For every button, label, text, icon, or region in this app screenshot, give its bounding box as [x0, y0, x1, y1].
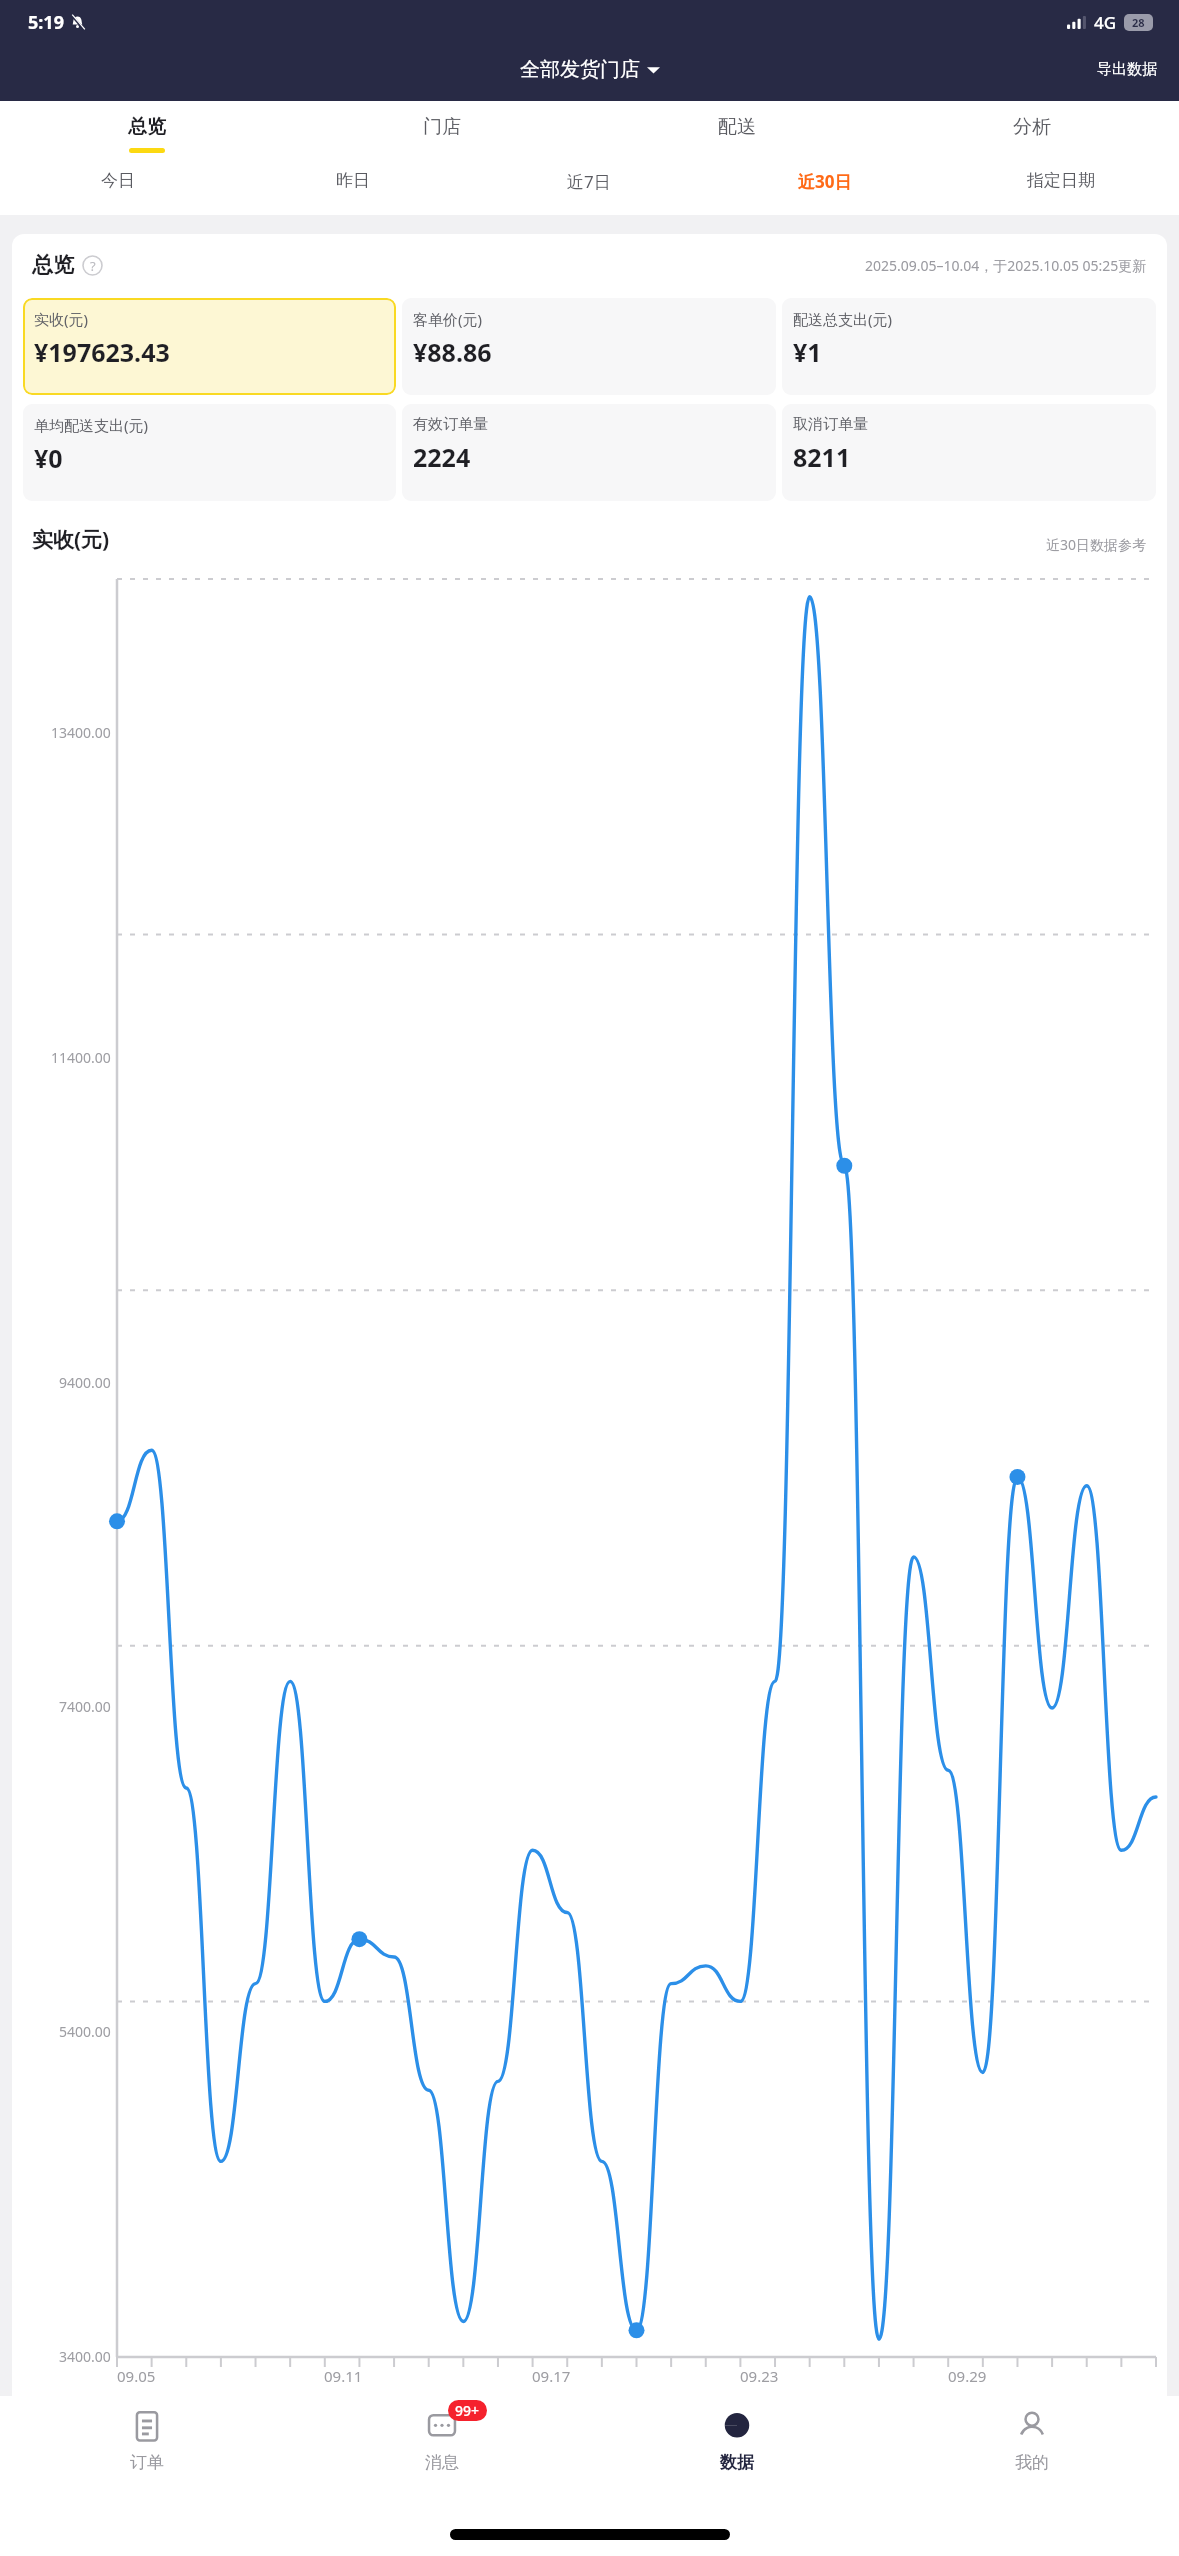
button[interactable]: 近7日 — [471, 170, 707, 193]
button[interactable]: 配送 — [589, 115, 884, 153]
button[interactable]: 近30日 — [707, 170, 943, 193]
button[interactable]: 单均配送支出(元) — [23, 404, 396, 501]
staticText: 我的 — [1015, 2452, 1049, 2473]
staticText: 9400.00 — [59, 1373, 111, 1392]
staticText: ¥88.86 — [413, 335, 492, 369]
staticText: 09.29 — [948, 2366, 987, 2386]
staticText: 有效订单量 — [413, 415, 488, 434]
button[interactable]: 今日 — [0, 170, 235, 191]
button[interactable]: 说明 — [82, 255, 103, 276]
button[interactable]: 有效订单量 — [402, 404, 776, 501]
staticText: 导出数据 — [1097, 60, 1157, 79]
other: 我的 — [1014, 2408, 1050, 2444]
staticText: 近30日数据参考 — [1046, 535, 1147, 554]
staticText: 客单价(元) — [413, 309, 483, 329]
staticText: 配送 — [718, 115, 756, 139]
staticText: 09.05 — [117, 2366, 156, 2386]
button[interactable]: 配送总支出(元) — [782, 298, 1156, 395]
staticText: 今日 — [101, 170, 135, 191]
button[interactable]: 订单 — [0, 2396, 294, 2501]
staticText: 总览 — [32, 252, 74, 278]
staticText: 实收(元) — [34, 309, 89, 329]
button[interactable]: 取消订单量 — [782, 404, 1156, 501]
staticText: 2025.09.05–10.04，于2025.10.05 05:25更新 — [865, 256, 1147, 275]
other: 订单 — [129, 2408, 165, 2444]
staticText: 总览 — [128, 115, 166, 139]
staticText: 实收(元) — [32, 525, 110, 554]
staticText: 配送总支出(元) — [793, 309, 893, 329]
staticText: ¥0 — [34, 441, 63, 475]
staticText: 昨日 — [336, 170, 370, 191]
staticText: ¥1 — [793, 335, 822, 369]
other: 数据 — [719, 2408, 755, 2444]
staticText: 11400.00 — [51, 1048, 111, 1067]
staticText: 指定日期 — [1027, 170, 1095, 191]
button[interactable]: 全部发货门店 — [512, 51, 668, 88]
staticText: 7400.00 — [59, 1697, 111, 1716]
staticText: 取消订单量 — [793, 415, 868, 434]
button[interactable]: 昨日 — [235, 170, 471, 191]
staticText: 近7日 — [567, 170, 611, 193]
button[interactable]: 我的 — [884, 2396, 1179, 2501]
staticText: 2224 — [413, 440, 471, 474]
staticText: 数据 — [720, 2452, 754, 2473]
staticText: 消息 — [425, 2452, 459, 2473]
button[interactable]: 数据 — [589, 2396, 884, 2501]
staticText: 5400.00 — [59, 2022, 111, 2041]
other: Silent mode — [70, 15, 85, 30]
button[interactable]: 总览 — [0, 115, 294, 153]
staticText: 09.11 — [324, 2366, 363, 2386]
staticText: ¥197623.43 — [34, 335, 170, 369]
staticText: ? — [90, 257, 96, 275]
staticText: 99+ — [455, 2401, 480, 2420]
staticText: 订单 — [130, 2452, 164, 2473]
button[interactable]: 导出数据 — [1087, 52, 1167, 87]
button[interactable]: 消息 — [294, 2396, 589, 2501]
staticText: 门店 — [423, 115, 461, 139]
other: 消息 — [424, 2408, 460, 2444]
staticText: 09.23 — [740, 2366, 779, 2386]
staticText: 4G — [1094, 11, 1117, 34]
staticText: 5:19 — [28, 10, 64, 35]
staticText: 13400.00 — [51, 723, 111, 742]
staticText: 09.17 — [532, 2366, 571, 2386]
button[interactable]: 分析 — [884, 115, 1179, 153]
staticText: 单均配送支出(元) — [34, 415, 149, 435]
button[interactable]: 门店 — [294, 115, 589, 153]
staticText: 8211 — [793, 440, 851, 474]
staticText: 3400.00 — [59, 2347, 111, 2366]
button[interactable]: 指定日期 — [943, 170, 1179, 191]
button[interactable]: 客单价(元) — [402, 298, 776, 395]
button[interactable]: 实收(元) — [23, 298, 396, 395]
staticText: 28 — [1132, 15, 1145, 30]
staticText: 全部发货门店 — [520, 57, 640, 82]
staticText: 分析 — [1013, 115, 1051, 139]
staticText: 近30日 — [798, 170, 852, 193]
